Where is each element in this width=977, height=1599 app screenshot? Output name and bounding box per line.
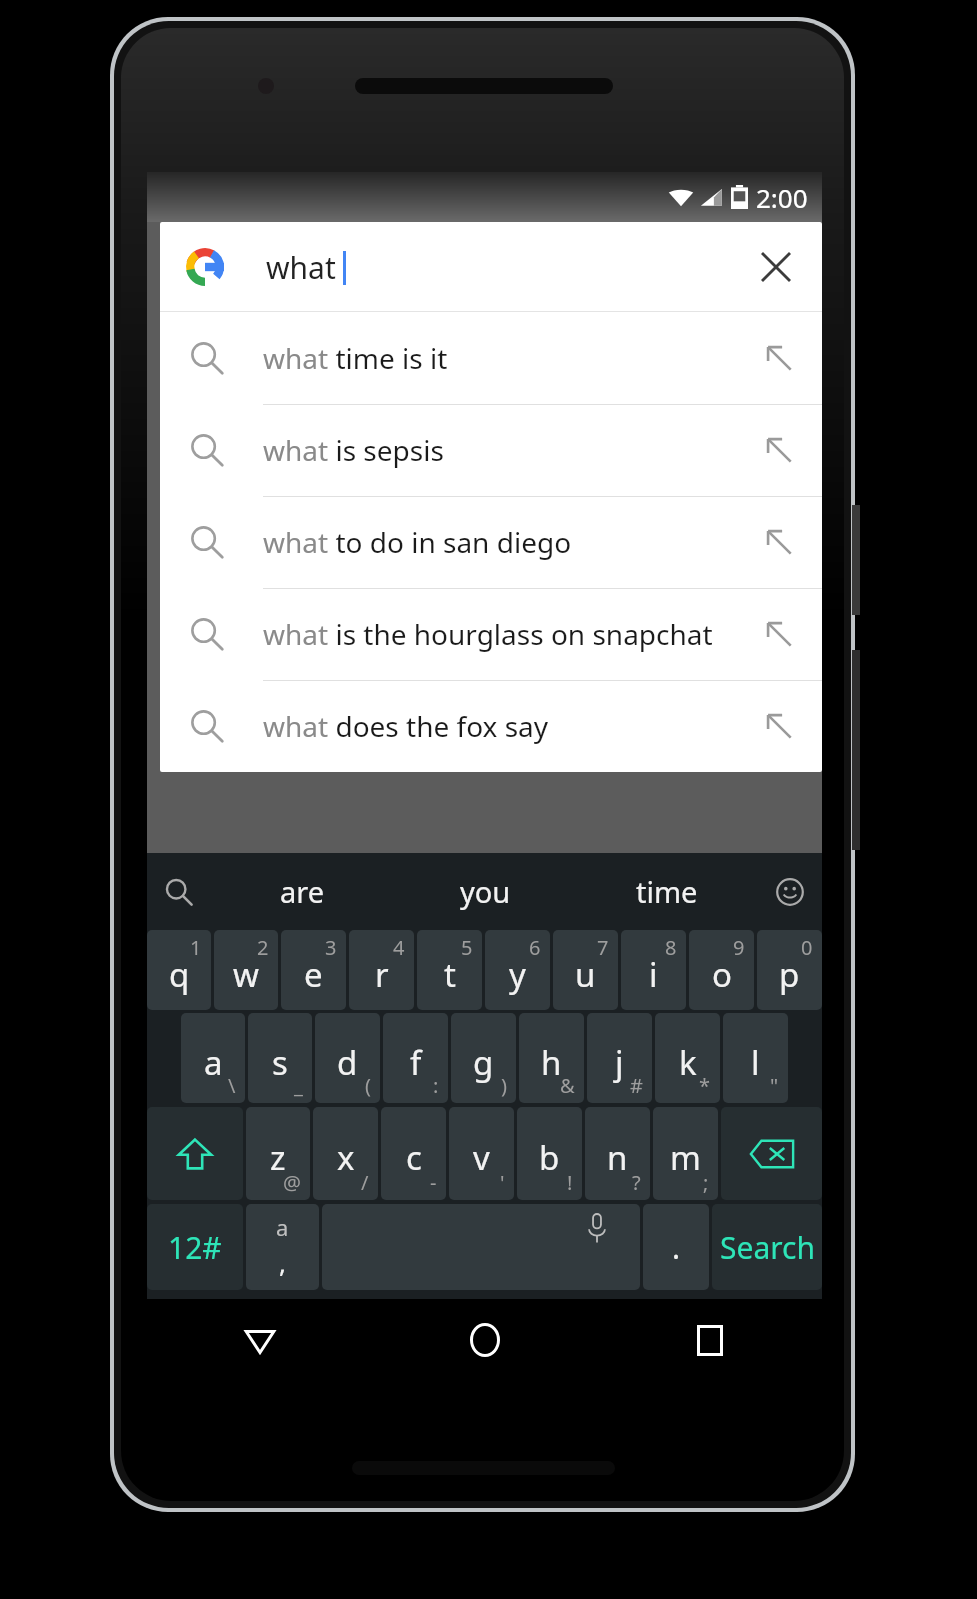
button[interactable]: Insert suggestion — [744, 323, 814, 393]
staticText: f — [410, 1040, 422, 1085]
button[interactable]: c — [381, 1107, 446, 1200]
button[interactable]: 12# — [147, 1204, 243, 1290]
staticText: @ — [283, 1169, 301, 1196]
staticText: * — [699, 1072, 711, 1099]
staticText: what — [266, 247, 336, 288]
staticText: 8 — [665, 934, 677, 961]
staticText: you — [460, 872, 511, 911]
staticText: & — [560, 1072, 575, 1099]
button[interactable]: Backspace — [721, 1107, 822, 1200]
button[interactable]: r — [349, 930, 414, 1010]
button[interactable]: you — [394, 853, 576, 930]
staticText: y — [509, 952, 526, 997]
button[interactable]: t — [417, 930, 482, 1010]
staticText: ( — [365, 1072, 371, 1099]
staticText: 6 — [529, 934, 541, 961]
staticText: a — [204, 1040, 223, 1085]
button[interactable]: Shift — [147, 1107, 243, 1200]
staticText: w — [233, 952, 259, 997]
staticText: : — [433, 1072, 439, 1099]
button[interactable]: Emoji — [758, 853, 822, 930]
staticText: . — [672, 1227, 681, 1268]
staticText: \ — [228, 1072, 236, 1099]
staticText: x — [337, 1135, 355, 1180]
staticText: c — [406, 1135, 422, 1180]
staticText: m — [670, 1135, 701, 1180]
button[interactable]: Insert suggestion — [744, 691, 814, 761]
staticText: g — [473, 1040, 494, 1085]
button[interactable]: f — [383, 1013, 448, 1103]
staticText: what is the hourglass on snapchat — [263, 615, 713, 653]
button[interactable]: Space — [322, 1204, 640, 1290]
staticText: r — [375, 952, 389, 997]
staticText: # — [630, 1072, 643, 1099]
button[interactable]: Insert suggestion — [744, 507, 814, 577]
button[interactable]: are — [211, 853, 394, 930]
staticText: s — [272, 1040, 288, 1085]
button[interactable]: Recent apps — [597, 1299, 822, 1381]
button[interactable]: v — [449, 1107, 514, 1200]
button[interactable]: l — [723, 1013, 788, 1103]
staticText: ' — [500, 1169, 505, 1196]
button[interactable]: Search — [712, 1204, 822, 1290]
staticText: ; — [703, 1169, 709, 1196]
button[interactable]: k — [655, 1013, 720, 1103]
button[interactable]: s — [248, 1013, 312, 1103]
button[interactable]: Insert suggestion — [744, 415, 814, 485]
staticText: b — [539, 1135, 560, 1180]
button[interactable]: what time is it — [160, 312, 822, 404]
button[interactable]: o — [689, 930, 754, 1010]
staticText: 5 — [461, 934, 473, 961]
button[interactable]: Home — [372, 1299, 597, 1381]
button[interactable]: what does the fox say — [160, 680, 822, 772]
staticText: 2 — [257, 934, 269, 961]
staticText: , — [279, 1245, 286, 1280]
staticText: d — [337, 1040, 358, 1085]
button[interactable]: j — [587, 1013, 652, 1103]
button[interactable]: m — [653, 1107, 718, 1200]
staticText: ? — [632, 1169, 641, 1196]
staticText: l — [751, 1040, 760, 1085]
staticText: / — [361, 1169, 369, 1196]
button[interactable]: Back — [147, 1299, 372, 1381]
button[interactable]: time — [576, 853, 758, 930]
button[interactable]: Search — [147, 853, 211, 930]
button[interactable]: h — [519, 1013, 584, 1103]
button[interactable]: n — [585, 1107, 650, 1200]
button[interactable]: d — [315, 1013, 380, 1103]
staticText: j — [615, 1040, 624, 1085]
staticText: 7 — [597, 934, 609, 961]
button[interactable]: Language, comma — [246, 1204, 319, 1290]
staticText: n — [607, 1135, 628, 1180]
button[interactable]: . — [643, 1204, 709, 1290]
button[interactable]: y — [485, 930, 550, 1010]
staticText: o — [712, 952, 732, 997]
staticText: are — [280, 872, 325, 911]
button[interactable]: i — [621, 930, 686, 1010]
button[interactable]: what is the hourglass on snapchat — [160, 588, 822, 680]
staticText: 4 — [393, 934, 405, 961]
staticText: Search — [720, 1227, 815, 1268]
staticText: 1 — [190, 934, 202, 961]
button[interactable]: w — [214, 930, 278, 1010]
staticText: what is sepsis — [263, 431, 444, 469]
staticText: ) — [501, 1072, 507, 1099]
button[interactable]: a — [181, 1013, 245, 1103]
staticText: k — [679, 1040, 697, 1085]
button[interactable]: Clear query — [740, 231, 812, 303]
staticText: - — [430, 1169, 437, 1196]
button[interactable]: p — [757, 930, 822, 1010]
button[interactable]: u — [553, 930, 618, 1010]
button[interactable]: g — [451, 1013, 516, 1103]
button[interactable]: b — [517, 1107, 582, 1200]
button[interactable]: z — [246, 1107, 310, 1200]
staticText: 0 — [801, 934, 813, 961]
staticText: z — [270, 1135, 286, 1180]
button[interactable]: q — [147, 930, 211, 1010]
button[interactable]: what to do in san diego — [160, 496, 822, 588]
button[interactable]: e — [281, 930, 346, 1010]
button[interactable]: what is sepsis — [160, 404, 822, 496]
staticText: p — [779, 952, 800, 997]
button[interactable]: Insert suggestion — [744, 599, 814, 669]
button[interactable]: x — [313, 1107, 378, 1200]
